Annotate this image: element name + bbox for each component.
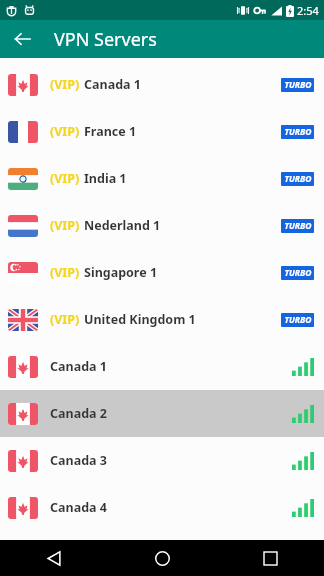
button[interactable]: Recents: [216, 540, 324, 576]
staticText: (VIP): [50, 170, 80, 187]
staticText: Singapore 1: [84, 264, 158, 281]
staticText: (VIP): [50, 123, 80, 140]
button[interactable]: (VIP): [0, 296, 324, 343]
button[interactable]: Home: [108, 540, 216, 576]
staticText: TURBO: [284, 126, 312, 138]
button[interactable]: Back: [6, 23, 38, 55]
staticText: (VIP): [50, 311, 80, 328]
staticText: Canada 3: [50, 452, 107, 469]
staticText: TURBO: [284, 79, 312, 91]
button[interactable]: Canada 2: [0, 390, 324, 437]
staticText: VPN Servers: [54, 27, 157, 52]
staticText: TURBO: [284, 220, 312, 232]
staticText: (VIP): [50, 217, 80, 234]
button[interactable]: (VIP): [0, 61, 324, 108]
other: Signal strength: [292, 499, 314, 517]
staticText: TURBO: [284, 267, 312, 279]
button[interactable]: Canada 3: [0, 437, 324, 484]
staticText: Nederland 1: [84, 217, 161, 234]
staticText: (VIP): [50, 264, 80, 281]
other: Signal strength: [292, 358, 314, 376]
button[interactable]: Canada 4: [0, 484, 324, 531]
button[interactable]: (VIP): [0, 155, 324, 202]
button[interactable]: Canada 1: [0, 343, 324, 390]
staticText: India 1: [84, 170, 127, 187]
staticText: 2:54: [297, 3, 319, 18]
staticText: (VIP): [50, 76, 80, 93]
button[interactable]: (VIP): [0, 108, 324, 155]
staticText: Canada 1: [50, 358, 107, 375]
other: Signal strength: [292, 452, 314, 470]
staticText: TURBO: [284, 173, 312, 185]
other: Signal strength: [292, 405, 314, 423]
staticText: TURBO: [284, 314, 312, 326]
button[interactable]: (VIP): [0, 249, 324, 296]
staticText: Canada 1: [84, 76, 141, 93]
staticText: Canada 4: [50, 499, 107, 516]
staticText: Canada 2: [50, 405, 107, 422]
staticText: France 1: [84, 123, 137, 140]
staticText: United Kingdom 1: [84, 311, 196, 328]
button[interactable]: (VIP): [0, 202, 324, 249]
button[interactable]: Back: [0, 540, 108, 576]
